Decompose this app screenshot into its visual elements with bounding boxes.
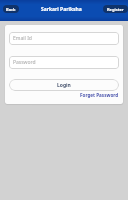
button[interactable]: Back (3, 5, 19, 13)
button[interactable]: Register (103, 5, 128, 13)
staticText: Back (6, 7, 16, 12)
staticText: Login (57, 82, 71, 89)
staticText: Sarkari Pariksha (41, 6, 82, 13)
button[interactable]: Password (9, 56, 119, 69)
button[interactable]: Forget Password (80, 92, 119, 98)
button[interactable]: Email Id (9, 32, 119, 45)
staticText: Password (13, 59, 36, 66)
button[interactable]: Login (9, 79, 119, 91)
staticText: Email Id (13, 35, 32, 42)
staticText: Register (107, 7, 124, 12)
